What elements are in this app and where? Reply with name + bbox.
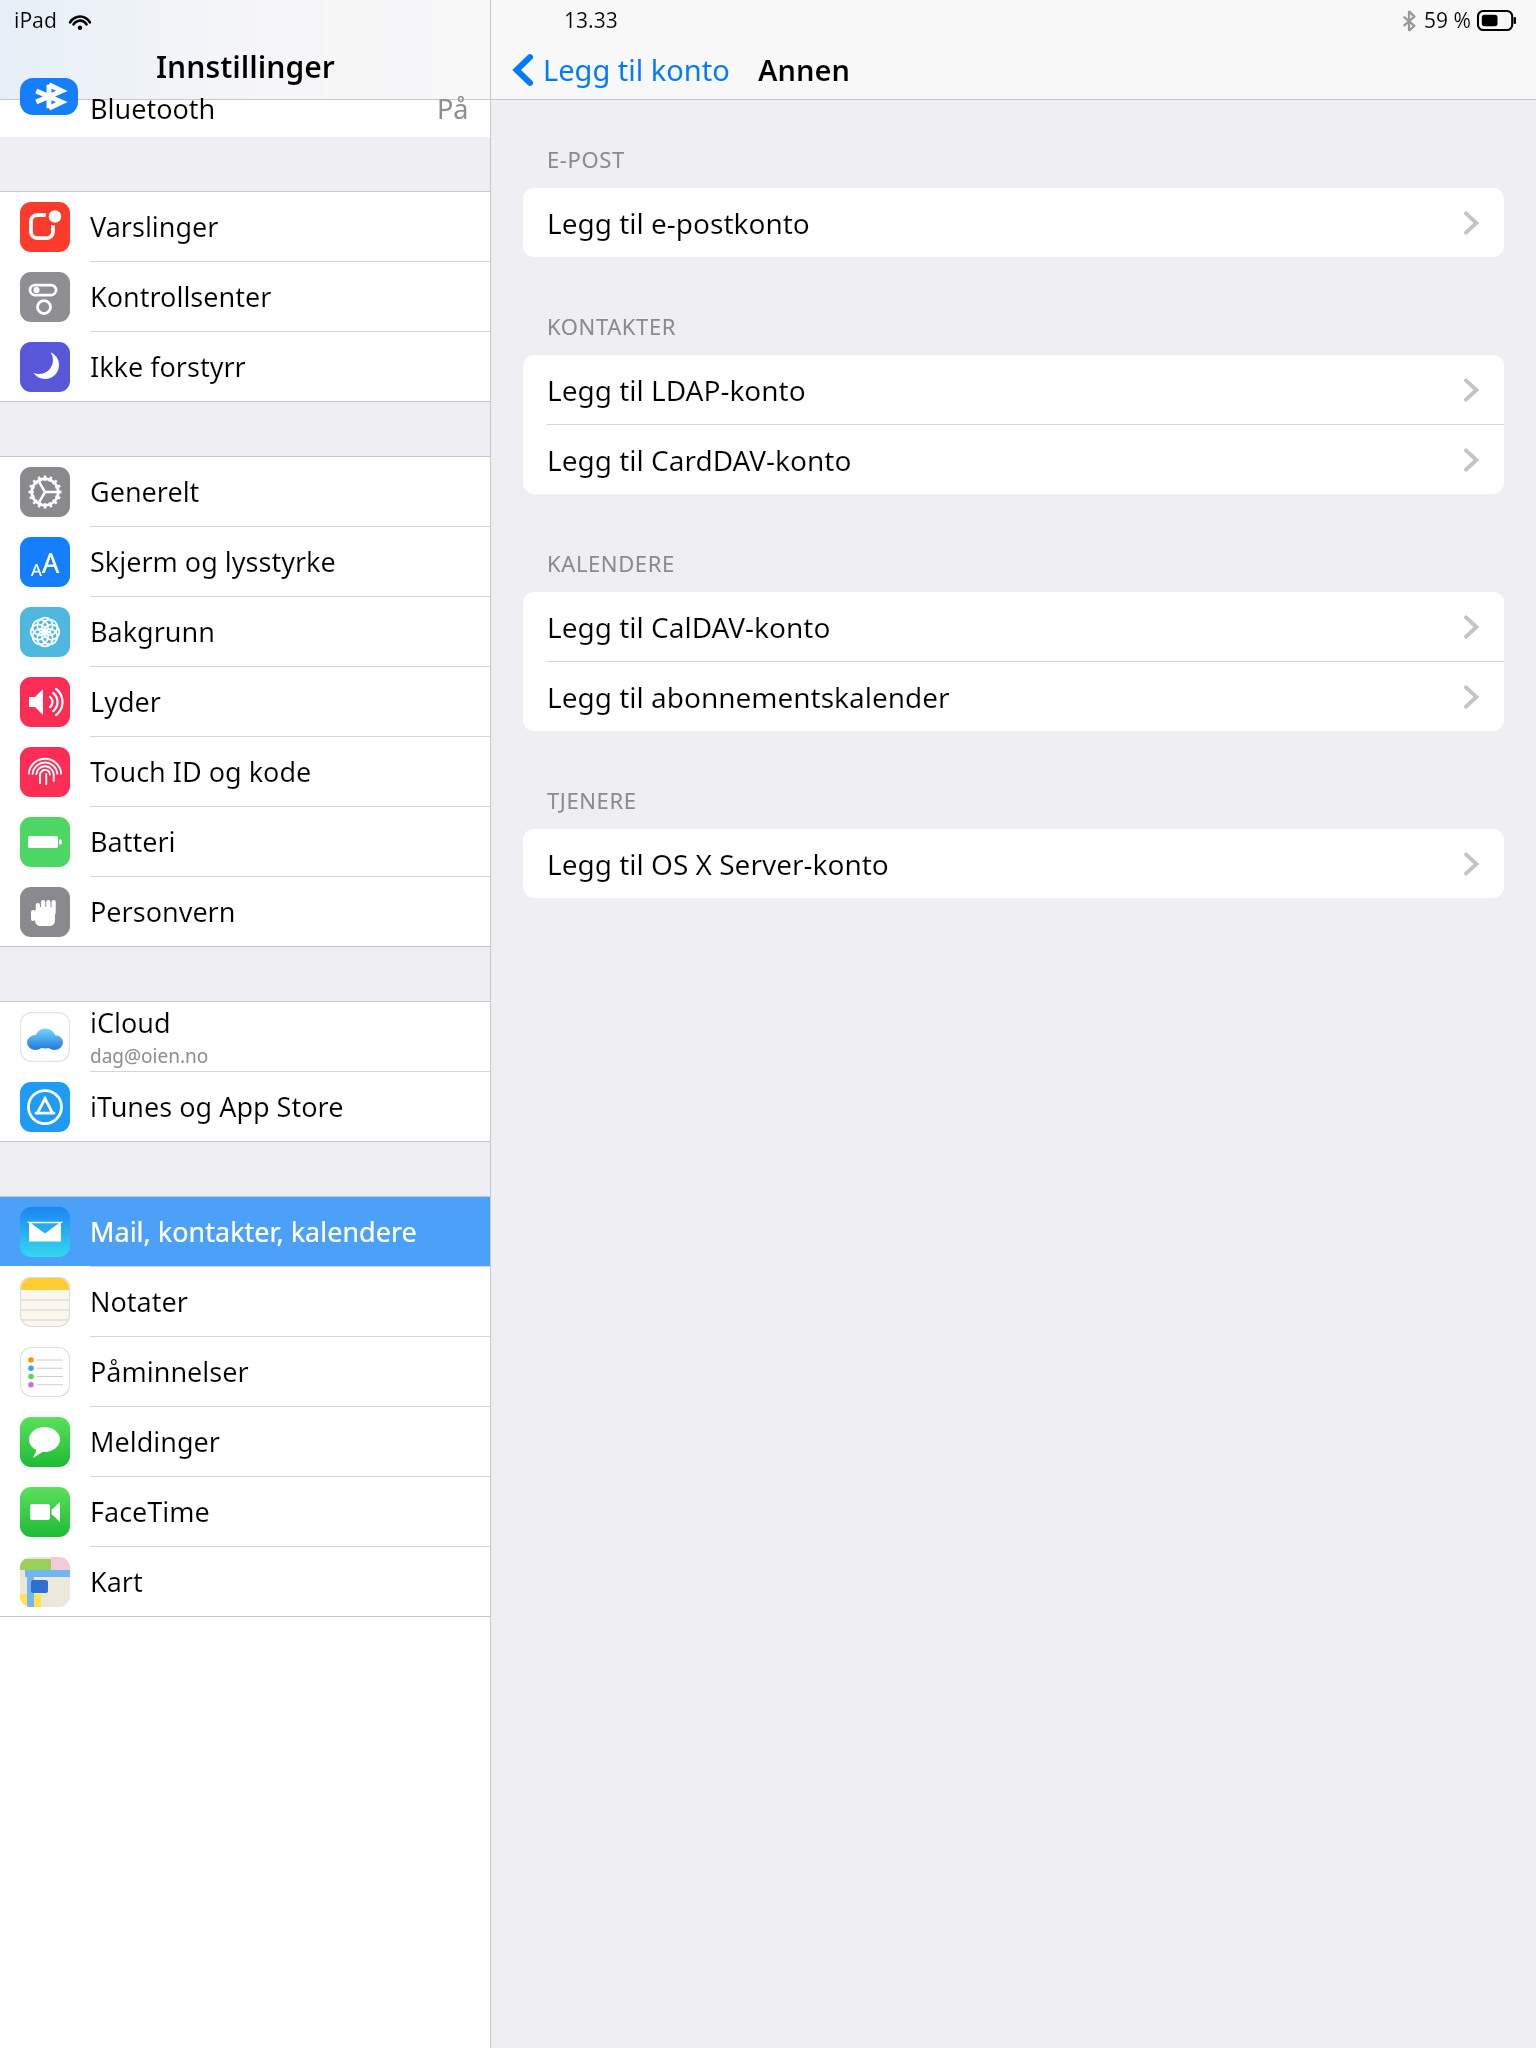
staticText: Lyder	[90, 683, 161, 720]
staticText: Generelt	[90, 473, 200, 510]
staticText: Legg til CalDAV-konto	[547, 608, 831, 646]
button[interactable]: Legg til CardDAV-konto	[523, 425, 1504, 494]
staticText: Legg til abonnementskalender	[547, 678, 950, 716]
staticText: På	[437, 90, 469, 127]
staticText: TJENERE	[547, 785, 637, 815]
staticText: Personvern	[90, 893, 236, 930]
button[interactable]: Ikke forstyrr	[0, 332, 490, 401]
button[interactable]: iCloud	[0, 1002, 490, 1071]
button[interactable]: Legg til abonnementskalender	[523, 662, 1504, 731]
staticText: Legg til e-postkonto	[547, 204, 810, 242]
staticText: A	[31, 558, 42, 581]
button[interactable]: Påminnelser	[0, 1337, 490, 1406]
button[interactable]: iTunes og App Store	[0, 1072, 490, 1141]
staticText: Ikke forstyrr	[90, 348, 246, 385]
staticText: Batteri	[90, 823, 176, 860]
staticText: A	[42, 544, 60, 581]
button[interactable]: Bakgrunn	[0, 597, 490, 666]
button[interactable]: Mail, kontakter, kalendere	[0, 1197, 490, 1266]
button[interactable]: Batteri	[0, 807, 490, 876]
staticText: 13.33	[564, 6, 618, 35]
button[interactable]: Legg til e-postkonto	[523, 188, 1504, 257]
button[interactable]: Meldinger	[0, 1407, 490, 1476]
button[interactable]: Personvern	[0, 877, 490, 946]
button[interactable]: Lyder	[0, 667, 490, 736]
staticText: Legg til OS X Server-konto	[547, 845, 889, 883]
staticText: Kart	[90, 1563, 143, 1600]
staticText: Annen	[758, 50, 850, 89]
button[interactable]: Kart	[0, 1547, 490, 1616]
staticText: KONTAKTER	[547, 311, 676, 341]
button[interactable]: A	[0, 527, 490, 596]
button[interactable]: FaceTime	[0, 1477, 490, 1546]
staticText: Skjerm og lysstyrke	[90, 543, 336, 580]
staticText: iPad	[14, 6, 57, 35]
staticText: Innstillinger	[156, 46, 335, 87]
staticText: Legg til CardDAV-konto	[547, 441, 852, 479]
staticText: KALENDERE	[547, 548, 675, 578]
button[interactable]: Notater	[0, 1267, 490, 1336]
staticText: Bakgrunn	[90, 613, 215, 650]
button[interactable]: Touch ID og kode	[0, 737, 490, 806]
staticText: Meldinger	[90, 1423, 220, 1460]
staticText: iTunes og App Store	[90, 1088, 344, 1125]
button[interactable]: Legg til OS X Server-konto	[523, 829, 1504, 898]
staticText: dag@oien.no	[90, 1043, 209, 1069]
button[interactable]: Generelt	[0, 457, 490, 526]
staticText: 59 %	[1424, 6, 1471, 35]
staticText: Bluetooth	[90, 90, 216, 127]
button[interactable]: Kontrollsenter	[0, 262, 490, 331]
staticText: FaceTime	[90, 1493, 210, 1530]
staticText: Mail, kontakter, kalendere	[90, 1213, 417, 1250]
staticText: Touch ID og kode	[90, 753, 312, 790]
staticText: Varslinger	[90, 208, 219, 245]
button[interactable]: Legg til CalDAV-konto	[523, 592, 1504, 661]
staticText: E-POST	[547, 144, 625, 174]
button[interactable]: Varslinger	[0, 192, 490, 261]
button[interactable]: Legg til LDAP-konto	[523, 355, 1504, 424]
staticText: Notater	[90, 1283, 188, 1320]
staticText: Legg til konto	[543, 50, 730, 89]
staticText: iCloud	[90, 1004, 171, 1041]
staticText: Legg til LDAP-konto	[547, 371, 806, 409]
button[interactable]: Legg til konto	[509, 44, 734, 95]
staticText: Kontrollsenter	[90, 278, 272, 315]
staticText: Påminnelser	[90, 1353, 249, 1390]
